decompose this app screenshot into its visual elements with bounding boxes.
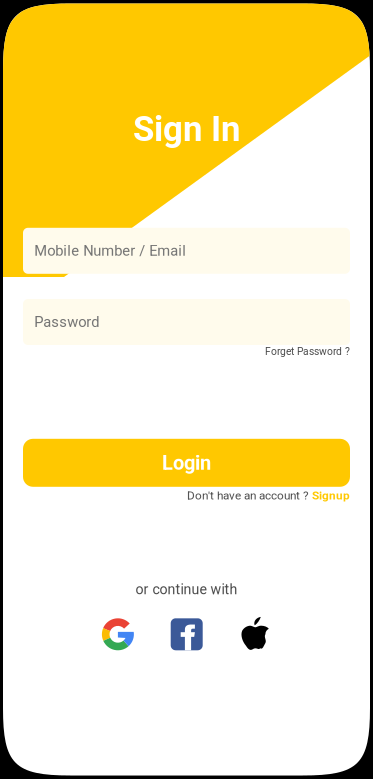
button[interactable]: Login: [23, 439, 350, 487]
button[interactable]: Continue with Google: [102, 618, 134, 650]
button[interactable]: Continue with Apple: [241, 617, 269, 650]
staticText: Sign In: [133, 109, 240, 149]
staticText: Mobile Number / Email: [34, 242, 186, 259]
staticText: Password: [34, 313, 99, 331]
staticText: Login: [162, 451, 211, 474]
staticText: Forget Password ?: [265, 345, 350, 357]
staticText: or continue with: [135, 581, 237, 598]
staticText: Don't have an account ?: [187, 489, 312, 502]
button[interactable]: Continue with Facebook: [171, 618, 203, 650]
button[interactable]: Forget Password ?: [23, 344, 350, 358]
button[interactable]: Password: [23, 299, 350, 345]
button[interactable]: Signup: [312, 489, 350, 502]
staticText: Signup: [312, 489, 350, 502]
button[interactable]: Mobile Number / Email: [23, 228, 350, 274]
